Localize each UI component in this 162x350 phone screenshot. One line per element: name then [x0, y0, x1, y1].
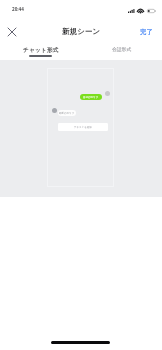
button[interactable]: 相手のセリフ	[58, 110, 76, 116]
button[interactable]: 閉じる	[2, 22, 21, 41]
staticText: 新規シーン	[62, 27, 100, 36]
button[interactable]: 完了	[131, 24, 162, 40]
staticText: 自分のセリフ	[83, 96, 99, 99]
button[interactable]: チャット形式	[0, 0, 81, 60]
button[interactable]: 会話形式	[81, 0, 162, 60]
button[interactable]: テキストを追加	[58, 123, 108, 131]
staticText: チャット形式	[23, 46, 59, 53]
staticText: 完了	[140, 28, 153, 36]
button[interactable]: 自分のセリフ	[80, 94, 102, 100]
staticText: テキストを追加	[74, 126, 92, 129]
staticText: 相手のセリフ	[59, 112, 75, 115]
staticText: 20:44	[12, 6, 24, 12]
staticText: 会話形式	[112, 46, 132, 52]
